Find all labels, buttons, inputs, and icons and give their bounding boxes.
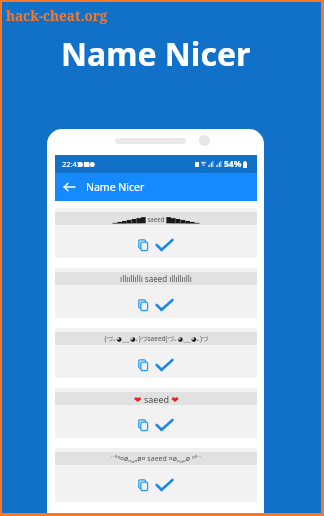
staticText: 22:45 xyxy=(62,159,82,169)
button[interactable]: Copy xyxy=(135,237,151,253)
staticText: ıllııllıllı saeed ıllıllııllı xyxy=(120,273,192,284)
button[interactable]: Apply xyxy=(154,235,174,255)
button[interactable]: ❤ saeed ❤ xyxy=(55,388,257,438)
button[interactable]: Apply xyxy=(154,415,174,435)
button[interactable]: ıllııllıllı saeed ıllıllııllı xyxy=(55,268,257,318)
staticText: Name Nicer xyxy=(61,32,251,76)
button[interactable]: Copy xyxy=(135,477,151,493)
staticText: hack-cheat.org xyxy=(6,7,108,25)
staticText: (づ｡◕‿‿◕｡)づsaeed(づ｡◕‿‿◕｡)づ xyxy=(104,334,209,343)
button[interactable]: (づ｡◕‿‿◕｡)づsaeed(づ｡◕‿‿◕｡)づ xyxy=(55,328,257,378)
staticText: Name Nicer xyxy=(86,180,145,194)
staticText: 54% xyxy=(224,158,242,170)
button[interactable]: ▁▂▃▄▅▆▇ saeed ▇▆▅▄▃▂▁ xyxy=(55,208,257,258)
button[interactable]: Copy xyxy=(135,297,151,313)
button[interactable]: Back xyxy=(59,177,79,197)
button[interactable]: Back xyxy=(55,173,257,201)
button[interactable]: Copy xyxy=(135,357,151,373)
staticText: ❤ saeed ❤ xyxy=(134,393,179,405)
button[interactable]: Copy xyxy=(135,417,151,433)
staticText: ▁▂▃▄▅▆▇ saeed ▇▆▅▄▃▂▁ xyxy=(112,215,200,223)
button[interactable]: ¨°º¤ø„¸¸„ø¤ saeed ¤ø„¸¸„ø º°¨ xyxy=(55,448,257,502)
staticText: ¨°º¤ø„¸¸„ø¤ saeed ¤ø„¸¸„ø º°¨ xyxy=(110,454,202,464)
button[interactable]: Apply xyxy=(154,295,174,315)
button[interactable]: Apply xyxy=(154,475,174,495)
button[interactable]: Apply xyxy=(154,355,174,375)
